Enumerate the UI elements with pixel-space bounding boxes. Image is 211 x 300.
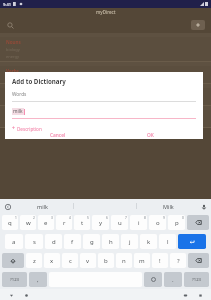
staticText: Nouns <box>6 39 21 45</box>
button[interactable]: Voice input <box>199 202 208 211</box>
button[interactable]: r <box>56 215 72 230</box>
button[interactable]: + <box>12 125 42 132</box>
staticText: All Categories <box>174 291 200 296</box>
button[interactable]: . <box>164 272 182 287</box>
button[interactable]: Expand toolbar <box>3 202 12 211</box>
button[interactable]: Cancel <box>12 132 104 139</box>
staticText: + <box>12 125 15 132</box>
staticText: myDirect <box>96 9 116 15</box>
button[interactable]: i <box>130 215 147 230</box>
button[interactable]: k <box>140 234 157 249</box>
button[interactable]: milk <box>12 108 196 119</box>
button[interactable]: s <box>25 234 43 249</box>
staticText: Plural <box>6 90 20 96</box>
button[interactable]: OK <box>104 132 196 139</box>
button[interactable]: t <box>74 215 90 230</box>
staticText: v <box>86 257 90 265</box>
button[interactable]: x <box>44 253 60 268</box>
staticText: k <box>147 238 151 246</box>
button[interactable]: Add <box>191 20 205 30</box>
button[interactable]: w <box>20 215 36 230</box>
button[interactable]: milk <box>12 203 73 210</box>
staticText: u <box>118 219 122 227</box>
staticText: 8 <box>144 216 146 220</box>
staticText: w <box>26 219 31 227</box>
staticText: milk <box>37 203 48 210</box>
staticText: Words <box>12 91 27 98</box>
button[interactable] <box>178 234 206 249</box>
staticText: g <box>90 238 94 246</box>
staticText: milk <box>13 108 23 115</box>
staticText: r <box>63 219 66 227</box>
button[interactable]: e <box>38 215 54 230</box>
button[interactable]: b <box>98 253 114 268</box>
button[interactable]: , <box>29 272 47 287</box>
button[interactable]: a <box>5 234 23 249</box>
button[interactable]: o <box>149 215 166 230</box>
staticText: Sort by time added <box>6 291 42 296</box>
button[interactable]: f <box>64 234 81 249</box>
button[interactable]: Search <box>5 20 15 30</box>
button[interactable]: u <box>111 215 128 230</box>
staticText: s <box>33 238 36 246</box>
button[interactable]: q <box>2 215 18 230</box>
button[interactable]: Recents <box>196 291 204 299</box>
staticText: 9:41 <box>3 2 11 7</box>
staticText: a <box>12 238 16 246</box>
staticText: f <box>71 238 74 246</box>
staticText: b <box>104 257 108 265</box>
button[interactable] <box>187 215 209 230</box>
staticText: 5 <box>87 216 89 220</box>
button[interactable]: z <box>26 253 42 268</box>
staticText: 7 <box>125 216 127 220</box>
button[interactable]: l <box>159 234 176 249</box>
staticText: q <box>8 219 12 227</box>
button[interactable]: All Categories <box>174 291 205 296</box>
staticText: h <box>109 238 113 246</box>
button[interactable]: v <box>80 253 96 268</box>
staticText: OK <box>147 132 154 139</box>
button[interactable] <box>2 253 24 268</box>
button[interactable]: Words <box>12 91 196 102</box>
staticText: Verbs <box>6 68 19 74</box>
staticText: l <box>167 238 169 246</box>
staticText: i <box>138 219 140 227</box>
button[interactable] <box>144 272 162 287</box>
staticText: ! <box>159 257 161 265</box>
button[interactable]: ! <box>152 253 168 268</box>
button[interactable] <box>188 253 209 268</box>
staticText: d <box>52 238 56 246</box>
staticText: 0 <box>182 216 184 220</box>
button[interactable]: Sort by time added <box>6 291 47 296</box>
staticText: 1 <box>15 216 17 220</box>
button[interactable]: y <box>92 215 109 230</box>
staticText: p <box>175 219 179 227</box>
staticText: Milk <box>163 203 174 210</box>
staticText: Cancel <box>50 132 66 139</box>
button[interactable]: ? <box>170 253 186 268</box>
staticText: n <box>122 257 126 265</box>
staticText: 6 <box>106 216 108 220</box>
button[interactable]: g <box>83 234 100 249</box>
button[interactable]: d <box>45 234 62 249</box>
button[interactable]: Switch keyboard <box>181 291 189 299</box>
staticText: items <box>6 98 17 103</box>
button[interactable]: p <box>168 215 185 230</box>
staticText: Add to Dictionary <box>12 77 66 85</box>
button[interactable]: Home <box>22 291 30 299</box>
staticText: 3 <box>51 216 53 220</box>
button[interactable]: ?123 <box>2 272 27 287</box>
button[interactable]: h <box>102 234 119 249</box>
staticText: energy <box>6 54 20 59</box>
staticText: Description <box>17 126 42 132</box>
button[interactable]: Milk <box>137 203 199 210</box>
button[interactable]: Back <box>7 291 15 299</box>
button[interactable]: n <box>116 253 132 268</box>
button[interactable]: ?123 <box>184 272 209 287</box>
button[interactable]: j <box>121 234 138 249</box>
button[interactable]: m <box>134 253 150 268</box>
staticText: ?123 <box>192 277 202 283</box>
button[interactable]: c <box>62 253 78 268</box>
